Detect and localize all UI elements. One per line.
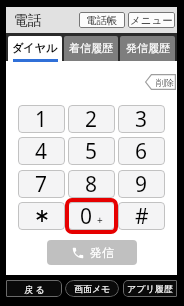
staticText: 8 bbox=[85, 170, 98, 198]
staticText: 電話 bbox=[14, 12, 42, 30]
button[interactable]: 削除 bbox=[145, 74, 176, 90]
button[interactable]: ダイヤル bbox=[8, 36, 62, 61]
button[interactable]: 5 bbox=[68, 137, 115, 165]
staticText: + bbox=[97, 213, 103, 227]
button[interactable]: 画面メモ bbox=[65, 280, 119, 297]
button[interactable]: 3 bbox=[118, 105, 165, 133]
staticText: # bbox=[135, 202, 149, 230]
button[interactable]: 発信 bbox=[47, 240, 137, 265]
staticText: 5 bbox=[85, 137, 98, 165]
button[interactable]: # bbox=[118, 202, 165, 230]
button[interactable]: 電話帳 bbox=[79, 12, 125, 28]
button[interactable]: 6 bbox=[118, 137, 165, 165]
staticText: 1 bbox=[35, 105, 48, 133]
staticText: 発信 bbox=[90, 245, 114, 260]
other: アスタリスク bbox=[36, 210, 48, 222]
staticText: 9 bbox=[135, 170, 148, 198]
staticText: 0 bbox=[80, 202, 93, 230]
button[interactable]: 1 bbox=[18, 105, 65, 133]
staticText: 着信履歴 bbox=[69, 41, 113, 55]
staticText: 戻 る bbox=[24, 283, 45, 295]
staticText: メニュー bbox=[130, 14, 173, 27]
button[interactable]: 戻 る bbox=[6, 280, 62, 297]
button[interactable]: 4 bbox=[18, 137, 65, 165]
button[interactable]: 7 bbox=[18, 170, 65, 198]
button[interactable]: 着信履歴 bbox=[64, 36, 118, 61]
staticText: 3 bbox=[135, 105, 148, 133]
button[interactable]: 8 bbox=[68, 170, 115, 198]
staticText: 発信履歴 bbox=[126, 41, 170, 55]
staticText: 6 bbox=[135, 137, 148, 165]
staticText: アプリ履歴 bbox=[127, 283, 173, 294]
staticText: 4 bbox=[35, 137, 48, 165]
button[interactable]: 発信履歴 bbox=[120, 36, 175, 61]
staticText: ダイヤル bbox=[12, 41, 58, 55]
button[interactable]: 2 bbox=[68, 105, 115, 133]
button[interactable]: 9 bbox=[118, 170, 165, 198]
button[interactable]: アプリ履歴 bbox=[123, 280, 177, 297]
staticText: 削除 bbox=[156, 77, 174, 88]
staticText: 7 bbox=[35, 170, 48, 198]
staticText: 画面メモ bbox=[74, 283, 111, 294]
staticText: 電話帳 bbox=[86, 14, 118, 27]
staticText: 2 bbox=[85, 105, 98, 133]
button[interactable]: 0 bbox=[68, 202, 115, 230]
button[interactable]: アスタリスク bbox=[18, 202, 65, 230]
button[interactable]: メニュー bbox=[128, 12, 175, 28]
